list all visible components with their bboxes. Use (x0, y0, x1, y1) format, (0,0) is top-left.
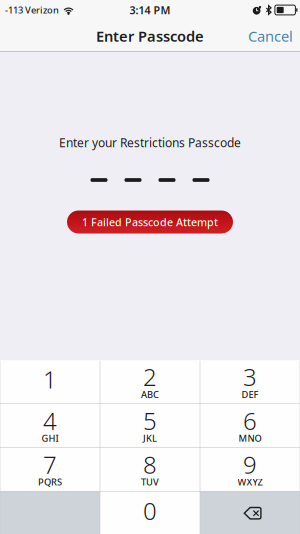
staticText: ABC (141, 388, 159, 400)
staticText: 3:14 PM (129, 3, 170, 17)
button[interactable]: 2 (100, 360, 200, 403)
staticText: Cancel (248, 26, 293, 46)
staticText: 4 (43, 405, 57, 437)
button[interactable]: 0 (100, 492, 200, 534)
staticText: 1 (43, 363, 57, 395)
staticText: DEF (241, 388, 258, 400)
button[interactable]: 4 (0, 404, 100, 447)
staticText: PQRS (38, 476, 62, 488)
staticText: MNO (238, 432, 261, 444)
staticText: WXYZ (237, 476, 262, 488)
button[interactable]: 5 (100, 404, 200, 447)
staticText: 1 Failed Passcode Attempt (82, 215, 218, 229)
button[interactable]: Delete (200, 492, 300, 534)
staticText: 0 (143, 495, 157, 527)
staticText: Enter your Restrictions Passcode (59, 134, 241, 150)
staticText: 6 (243, 405, 257, 437)
button[interactable]: 3 (200, 360, 300, 403)
button[interactable]: 7 (0, 448, 100, 491)
staticText: GHI (41, 432, 58, 444)
button[interactable]: 9 (200, 448, 300, 491)
button[interactable]: Cancel (241, 18, 300, 54)
staticText: Enter Passcode (96, 26, 204, 46)
staticText: 9 (243, 448, 257, 480)
button[interactable]: 8 (100, 448, 200, 491)
staticText: 2 (143, 361, 157, 393)
staticText: TUV (141, 476, 159, 488)
staticText: 5 (143, 405, 157, 437)
staticText: 3 (243, 361, 257, 393)
staticText: JKL (143, 432, 157, 444)
button[interactable]: 1 (0, 360, 100, 403)
button[interactable]: 6 (200, 404, 300, 447)
staticText: -113 Verizon (5, 4, 59, 16)
staticText: 8 (143, 448, 157, 480)
staticText: 7 (43, 448, 57, 480)
